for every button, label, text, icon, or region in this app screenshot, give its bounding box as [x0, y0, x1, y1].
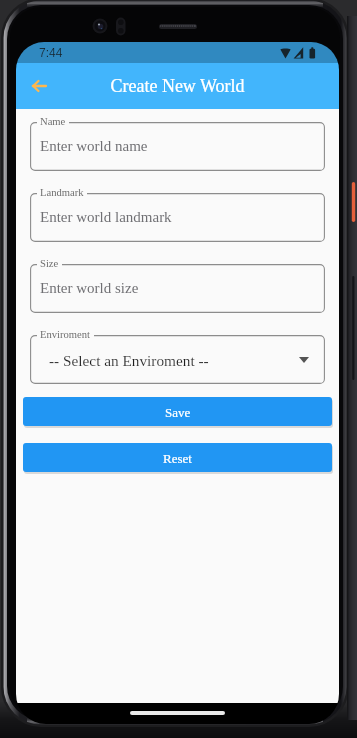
button[interactable]: Enter world size: [30, 264, 325, 313]
button[interactable]: Reset: [23, 443, 332, 472]
staticText: 7:44: [39, 46, 63, 59]
staticText: Landmark: [40, 187, 84, 199]
staticText: Enter world landmark: [40, 209, 172, 226]
staticText: Create New World: [110, 76, 245, 96]
button[interactable]: Back: [22, 69, 56, 103]
staticText: Save: [165, 405, 191, 419]
button[interactable]: -- Select an Enviroment --: [30, 335, 325, 384]
staticText: Enter world size: [40, 280, 139, 297]
staticText: Enviroment: [40, 329, 91, 341]
staticText: Enter world name: [40, 138, 148, 155]
staticText: Size: [40, 258, 59, 270]
button[interactable]: Enter world landmark: [30, 193, 325, 242]
staticText: Reset: [163, 451, 192, 465]
staticText: Name: [40, 116, 66, 128]
button[interactable]: Save: [23, 397, 332, 426]
staticText: -- Select an Enviroment --: [49, 352, 209, 369]
button[interactable]: Enter world name: [30, 122, 325, 171]
